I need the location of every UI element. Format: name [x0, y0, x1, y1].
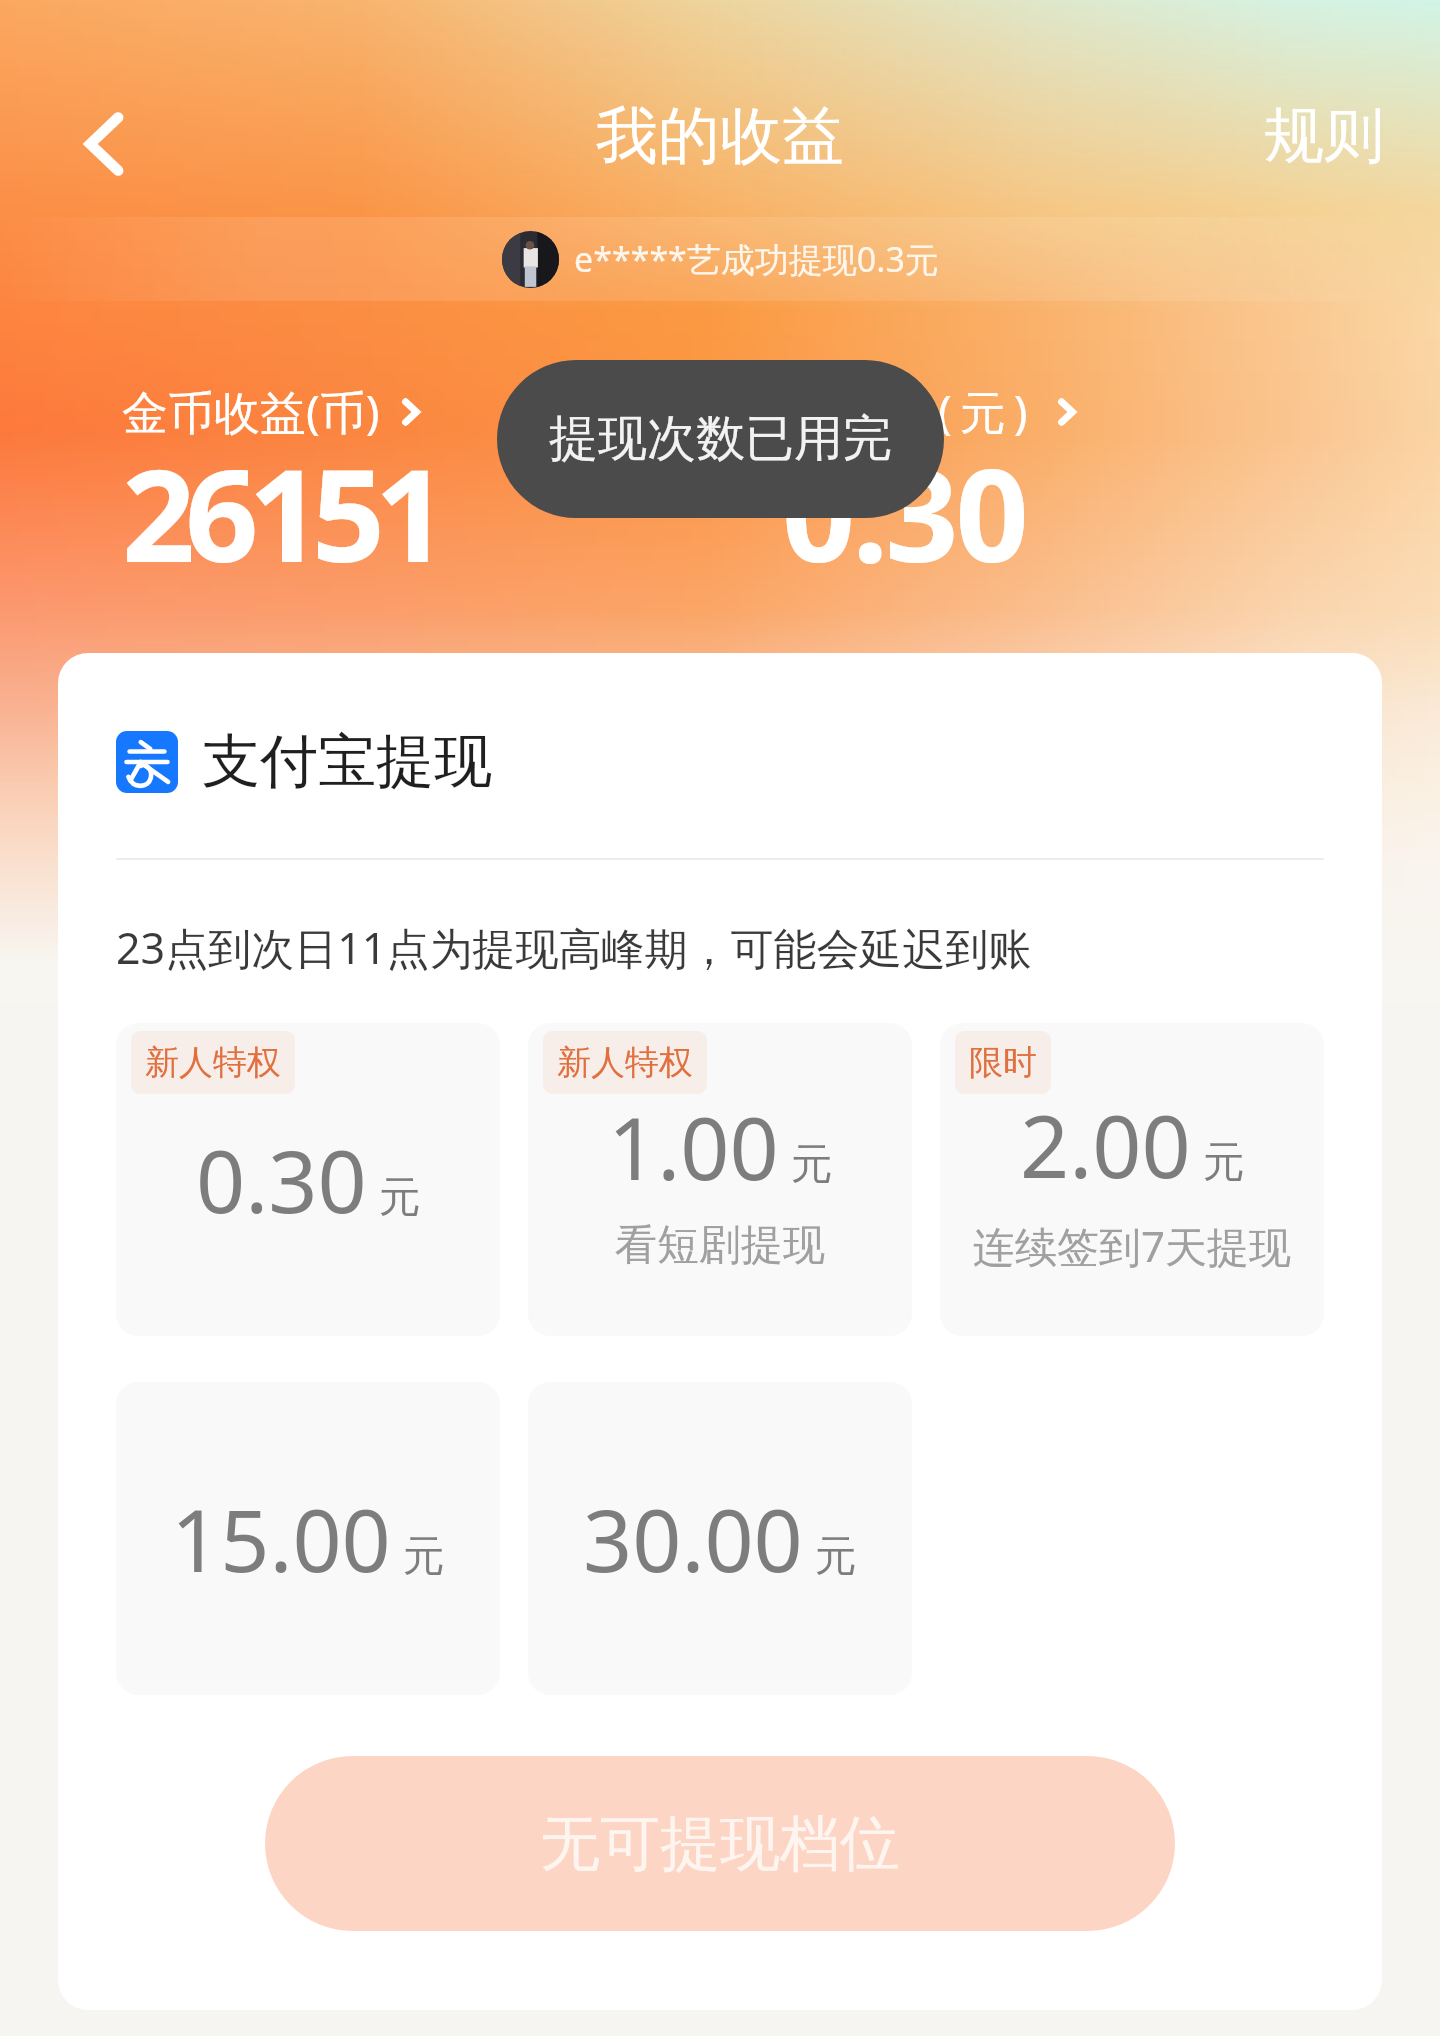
button[interactable]: 金币收益(币)	[122, 380, 428, 443]
staticText: 限时	[969, 1041, 1037, 1084]
staticText: 1.00	[608, 1088, 779, 1205]
staticText: 规则	[1264, 98, 1384, 174]
button[interactable]: 提现次数已用完	[497, 360, 944, 518]
staticText: 连续签到7天提现	[973, 1217, 1292, 1274]
staticText: 元	[403, 1530, 445, 1583]
staticText: e*****艺成功提现0.3元	[574, 236, 939, 282]
button[interactable]: 余额(元)	[830, 380, 1084, 443]
staticText: 元	[791, 1138, 833, 1191]
staticText: 提现次数已用完	[549, 408, 892, 470]
button[interactable]: 规则	[1252, 86, 1396, 186]
staticText: 我的收益	[596, 97, 844, 175]
staticText: 新人特权	[557, 1041, 693, 1084]
button[interactable]: 30.00	[528, 1382, 912, 1695]
button[interactable]: 新人特权	[528, 1023, 912, 1336]
staticText: 0.30	[196, 1121, 367, 1238]
staticText: 元	[815, 1530, 857, 1583]
staticText: 0.30	[782, 425, 1026, 599]
staticText: 15.00	[171, 1480, 391, 1597]
staticText: 金币收益(币)	[122, 380, 380, 443]
button[interactable]: 无可提现档位	[265, 1756, 1175, 1931]
button[interactable]: 限时	[940, 1023, 1324, 1336]
staticText: 无可提现档位	[540, 1806, 900, 1882]
button[interactable]: 15.00	[116, 1382, 500, 1695]
staticText: 新人特权	[145, 1041, 281, 1084]
staticText: 23点到次日11点为提现高峰期，可能会延迟到账	[116, 918, 1032, 977]
staticText: 余额(元)	[830, 380, 1036, 443]
staticText: 看短剧提现	[615, 1219, 825, 1272]
button[interactable]: 支付宝提现	[116, 725, 492, 798]
staticText: 30.00	[583, 1480, 803, 1597]
staticText: 26151	[122, 425, 439, 599]
button[interactable]: Back	[52, 89, 162, 199]
staticText: 元	[1203, 1136, 1245, 1189]
staticText: 支付宝提现	[202, 725, 492, 798]
button[interactable]: 新人特权	[116, 1023, 500, 1336]
button[interactable]: e*****艺成功提现0.3元	[0, 217, 1440, 301]
staticText: 元	[379, 1171, 421, 1224]
staticText: 2.00	[1020, 1086, 1191, 1203]
